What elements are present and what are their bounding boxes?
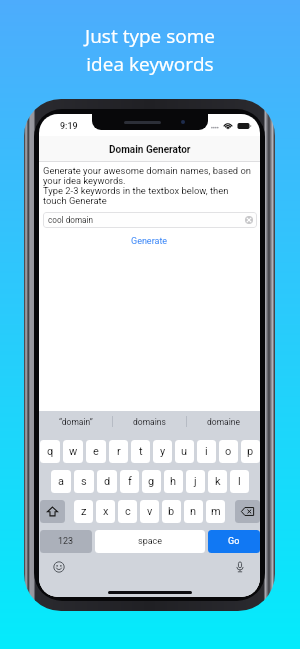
staticText: t bbox=[139, 445, 143, 458]
button[interactable]: y bbox=[153, 440, 172, 463]
staticText: j bbox=[194, 475, 197, 488]
staticText: l bbox=[238, 475, 241, 488]
button[interactable]: Clear text bbox=[245, 216, 253, 224]
staticText: cool domain bbox=[48, 215, 94, 225]
staticText: i bbox=[205, 445, 208, 458]
button[interactable]: i bbox=[197, 440, 216, 463]
button[interactable]: z bbox=[74, 500, 93, 523]
button[interactable]: space bbox=[95, 530, 205, 553]
staticText: z bbox=[81, 505, 87, 518]
button[interactable]: u bbox=[175, 440, 194, 463]
staticText: Generate your awesome domain names, base… bbox=[43, 165, 252, 206]
staticText: 123 bbox=[58, 536, 74, 547]
staticText: space bbox=[138, 536, 163, 547]
staticText: Go bbox=[228, 536, 240, 547]
staticText: f bbox=[128, 475, 132, 488]
button[interactable]: h bbox=[164, 470, 183, 493]
staticText: q bbox=[47, 445, 54, 458]
staticText: “domain” bbox=[59, 417, 93, 427]
staticText: b bbox=[168, 505, 175, 518]
button[interactable]: g bbox=[142, 470, 161, 493]
staticText: o bbox=[225, 445, 232, 458]
button[interactable]: k bbox=[208, 470, 227, 493]
staticText: x bbox=[103, 505, 109, 518]
button[interactable]: c bbox=[118, 500, 137, 523]
button[interactable]: s bbox=[74, 470, 94, 493]
staticText: d bbox=[104, 475, 111, 488]
staticText: s bbox=[81, 475, 87, 488]
staticText: p bbox=[247, 445, 254, 458]
staticText: e bbox=[93, 445, 99, 458]
button[interactable]: e bbox=[86, 440, 106, 463]
staticText: 9:19 bbox=[60, 121, 78, 132]
button[interactable]: “domain” bbox=[39, 411, 112, 432]
button[interactable]: t bbox=[131, 440, 150, 463]
staticText: Domain Generator bbox=[109, 144, 191, 156]
button[interactable]: Go bbox=[208, 530, 260, 553]
button[interactable]: r bbox=[109, 440, 128, 463]
button[interactable]: domaine bbox=[187, 411, 260, 432]
button[interactable]: n bbox=[184, 500, 203, 523]
staticText: m bbox=[211, 505, 221, 518]
staticText: g bbox=[148, 475, 155, 488]
staticText: u bbox=[181, 445, 188, 458]
staticText: r bbox=[117, 445, 121, 458]
button[interactable]: v bbox=[140, 500, 159, 523]
button[interactable]: w bbox=[63, 440, 83, 463]
button[interactable]: b bbox=[162, 500, 181, 523]
staticText: c bbox=[125, 505, 131, 518]
button[interactable]: 123 bbox=[40, 530, 92, 553]
staticText: domaine bbox=[207, 417, 240, 427]
staticText: n bbox=[190, 505, 197, 518]
button[interactable]: Dictation bbox=[234, 561, 246, 573]
button[interactable]: domains bbox=[113, 411, 186, 432]
button[interactable]: j bbox=[186, 470, 205, 493]
staticText: v bbox=[147, 505, 153, 518]
staticText: w bbox=[69, 445, 78, 458]
button[interactable]: p bbox=[241, 440, 260, 463]
button[interactable]: f bbox=[120, 470, 139, 493]
button[interactable]: Generate bbox=[125, 235, 174, 248]
staticText: domains bbox=[133, 417, 166, 427]
button[interactable]: cool domain bbox=[43, 212, 257, 228]
button[interactable]: a bbox=[51, 470, 71, 493]
button[interactable]: q bbox=[40, 440, 60, 463]
staticText: h bbox=[170, 475, 177, 488]
button[interactable]: x bbox=[96, 500, 115, 523]
button[interactable]: Shift bbox=[40, 500, 65, 523]
staticText: Generate bbox=[131, 236, 168, 247]
staticText: y bbox=[160, 445, 166, 458]
staticText: Just type some idea keywords bbox=[0, 23, 300, 76]
button[interactable]: l bbox=[230, 470, 249, 493]
staticText: k bbox=[215, 475, 221, 488]
button[interactable]: d bbox=[97, 470, 117, 493]
button[interactable]: Emoji keyboard bbox=[53, 561, 65, 573]
button[interactable]: Backspace bbox=[235, 500, 260, 523]
button[interactable]: m bbox=[206, 500, 225, 523]
button[interactable]: o bbox=[219, 440, 238, 463]
staticText: a bbox=[58, 475, 64, 488]
